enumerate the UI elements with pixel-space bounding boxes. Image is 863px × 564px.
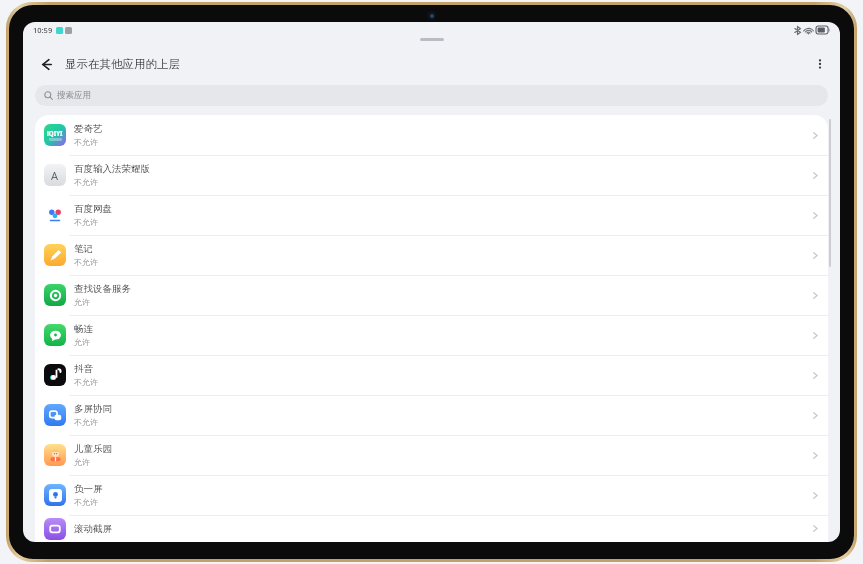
button[interactable]: 搜索应用 (35, 85, 828, 106)
staticText: 查找设备服务 (74, 283, 131, 295)
staticText: 爱奇艺 (74, 123, 103, 135)
staticText: 允许 (74, 337, 90, 347)
button[interactable]: 百度网盘 (35, 195, 828, 235)
staticText: 抖音 (74, 363, 93, 375)
staticText: 儿童乐园 (74, 443, 112, 455)
staticText: 百度输入法荣耀版 (74, 163, 150, 175)
button[interactable]: 儿童乐园 (35, 435, 828, 475)
button[interactable]: iQIYI (35, 115, 828, 155)
button[interactable]: 滚动截屏 (35, 515, 828, 542)
staticText: 百度网盘 (74, 203, 112, 215)
staticText: 畅连 (74, 323, 93, 335)
staticText: 允许 (74, 297, 90, 307)
staticText: 不允许 (74, 417, 98, 427)
button[interactable]: 抖音 (35, 355, 828, 395)
staticText: 滚动截屏 (74, 523, 112, 535)
button[interactable]: 负一屏 (35, 475, 828, 515)
button[interactable]: 多屏协同 (35, 395, 828, 435)
staticText: A (51, 168, 59, 183)
button[interactable]: A (35, 155, 828, 195)
button[interactable]: 笔记 (35, 235, 828, 275)
staticText: 不允许 (74, 497, 98, 507)
staticText: 搜索应用 (57, 90, 91, 101)
button[interactable]: 查找设备服务 (35, 275, 828, 315)
button[interactable]: 更多选项 (806, 50, 834, 78)
staticText: 不允许 (74, 377, 98, 387)
staticText: 负一屏 (74, 483, 103, 495)
staticText: 多屏协同 (74, 403, 112, 415)
staticText: 10:59 (33, 25, 53, 35)
staticText: 允许 (74, 457, 90, 467)
button[interactable]: 返回 (31, 49, 61, 79)
staticText: iQIYI (47, 129, 63, 137)
staticText: 显示在其他应用的上层 (65, 57, 180, 71)
staticText: 不允许 (74, 217, 98, 227)
staticText: 不允许 (74, 137, 98, 147)
staticText: 笔记 (74, 243, 93, 255)
button[interactable]: 畅连 (35, 315, 828, 355)
staticText: 不允许 (74, 177, 98, 187)
staticText: 不允许 (74, 257, 98, 267)
